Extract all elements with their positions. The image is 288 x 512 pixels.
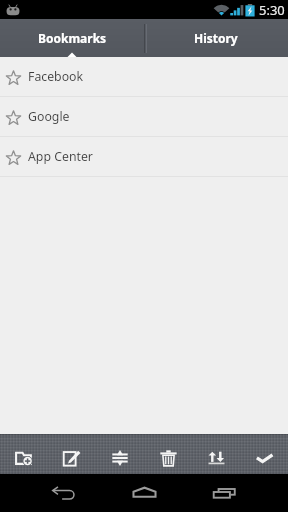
button[interactable]: App Center (0, 137, 288, 177)
button[interactable]: Bookmarks (0, 19, 144, 57)
button[interactable]: Done (240, 434, 288, 474)
button[interactable]: Home (124, 474, 164, 512)
button[interactable]: Back (43, 474, 83, 512)
button[interactable]: Edit bookmark (48, 434, 96, 474)
button[interactable]: Recent apps (204, 474, 244, 512)
button[interactable]: New folder (0, 434, 48, 474)
button[interactable]: Delete (144, 434, 192, 474)
button[interactable]: Sort (96, 434, 144, 474)
button[interactable]: History (144, 19, 288, 57)
staticText: 5:30 (259, 1, 285, 19)
staticText: Facebook (28, 68, 84, 85)
button[interactable]: Import and export (192, 434, 240, 474)
staticText: Google (28, 108, 70, 125)
button[interactable]: Facebook (0, 57, 288, 97)
staticText: History (194, 30, 238, 46)
staticText: App Center (28, 148, 93, 165)
staticText: Bookmarks (38, 30, 107, 46)
button[interactable]: Google (0, 97, 288, 137)
